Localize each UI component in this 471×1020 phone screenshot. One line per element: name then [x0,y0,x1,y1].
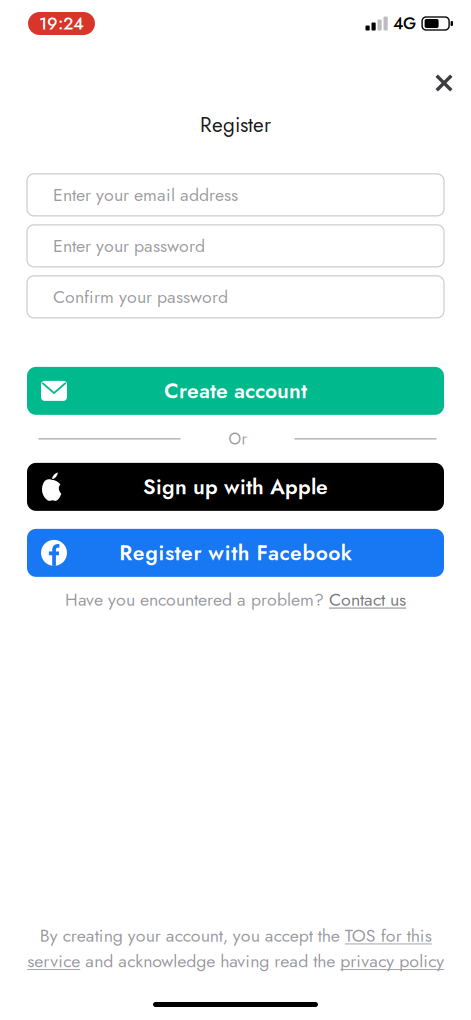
staticText: Have you encountered a problem? [65,587,329,612]
staticText: Sign up with Apple [143,472,328,502]
button[interactable]: Register with Facebook [27,529,444,577]
staticText: Confirm your password [53,284,228,310]
staticText: Register with Facebook [119,538,352,568]
staticText: Or [228,427,246,450]
staticText: By creating your account, you accept the… [27,923,444,974]
staticText: Enter your email address [53,182,238,208]
staticText: Enter your password [53,233,205,259]
staticText: 4G [393,11,416,36]
button[interactable]: Sign up with Apple [27,463,444,511]
staticText: Register [200,110,271,140]
button[interactable]: Contact us [329,587,406,612]
staticText: 19:24 [39,11,84,36]
button[interactable]: Create account [27,367,444,415]
staticText: Contact us [329,587,406,612]
staticText: Create account [164,376,307,406]
button[interactable]: Close [424,63,464,103]
